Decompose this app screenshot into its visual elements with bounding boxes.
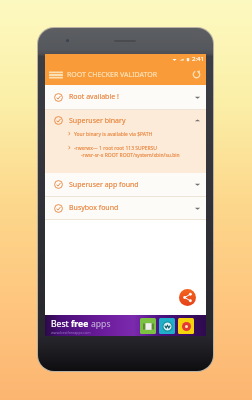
staticText: 2:41 <box>192 55 204 63</box>
staticText: -rwxrwx--- 1 root root 113 SUPERSU <box>74 145 158 152</box>
staticText: www.bestfreeapps.com <box>51 330 91 335</box>
staticText: Best <box>51 318 71 330</box>
button[interactable]: Superuser binary <box>45 110 206 131</box>
button[interactable]: Menu <box>48 67 64 83</box>
button[interactable]: Refresh <box>190 68 203 81</box>
staticText: Superuser app found <box>69 180 139 190</box>
staticText: Superuser binary <box>69 116 126 126</box>
button[interactable]: Superuser app found <box>45 173 206 196</box>
button[interactable]: Best <box>45 315 206 336</box>
staticText: -rwsr-sr-x ROOT ROOT/system/xbin/su.bin <box>81 152 180 159</box>
staticText: free <box>71 318 91 330</box>
button[interactable]: Busybox found <box>45 197 206 219</box>
staticText: Your binary is available via $PATH <box>74 131 153 138</box>
staticText: ROOT CHECKER VALIDATOR <box>67 70 158 80</box>
staticText: Busybox found <box>69 203 119 213</box>
staticText: apps <box>91 318 111 330</box>
button[interactable]: Share <box>179 289 196 306</box>
button[interactable]: Root available ! <box>45 85 206 109</box>
staticText: Root available ! <box>69 92 119 102</box>
